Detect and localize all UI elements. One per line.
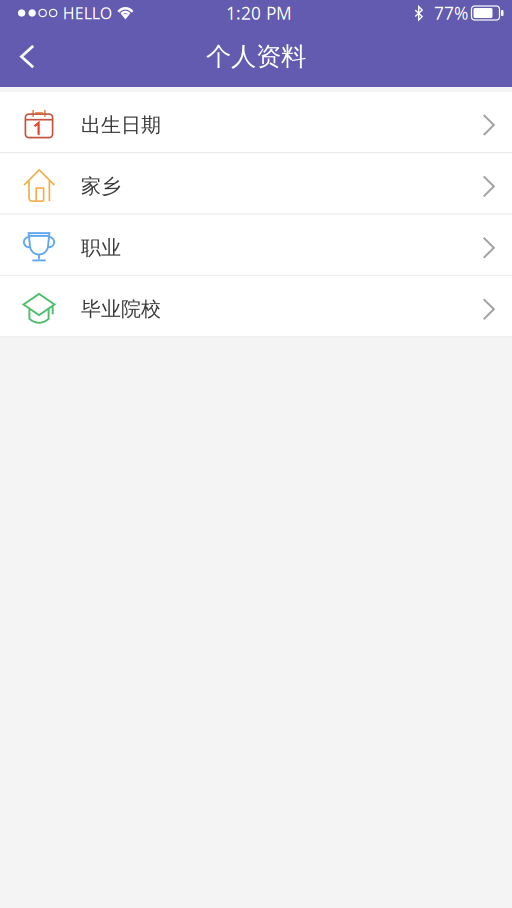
staticText: 77%: [434, 1, 468, 24]
staticText: 1:20 PM: [226, 1, 292, 24]
button[interactable]: Back: [0, 30, 54, 82]
button[interactable]: 职业: [0, 215, 512, 276]
staticText: 出生日期: [81, 113, 161, 137]
button[interactable]: 家乡: [0, 153, 512, 215]
button[interactable]: 出生日期: [0, 92, 512, 153]
staticText: 个人资料: [206, 41, 306, 72]
staticText: 毕业院校: [81, 297, 161, 321]
staticText: 职业: [81, 235, 121, 260]
staticText: 家乡: [81, 174, 121, 199]
button[interactable]: 毕业院校: [0, 276, 512, 338]
staticText: HELLO: [63, 2, 112, 24]
